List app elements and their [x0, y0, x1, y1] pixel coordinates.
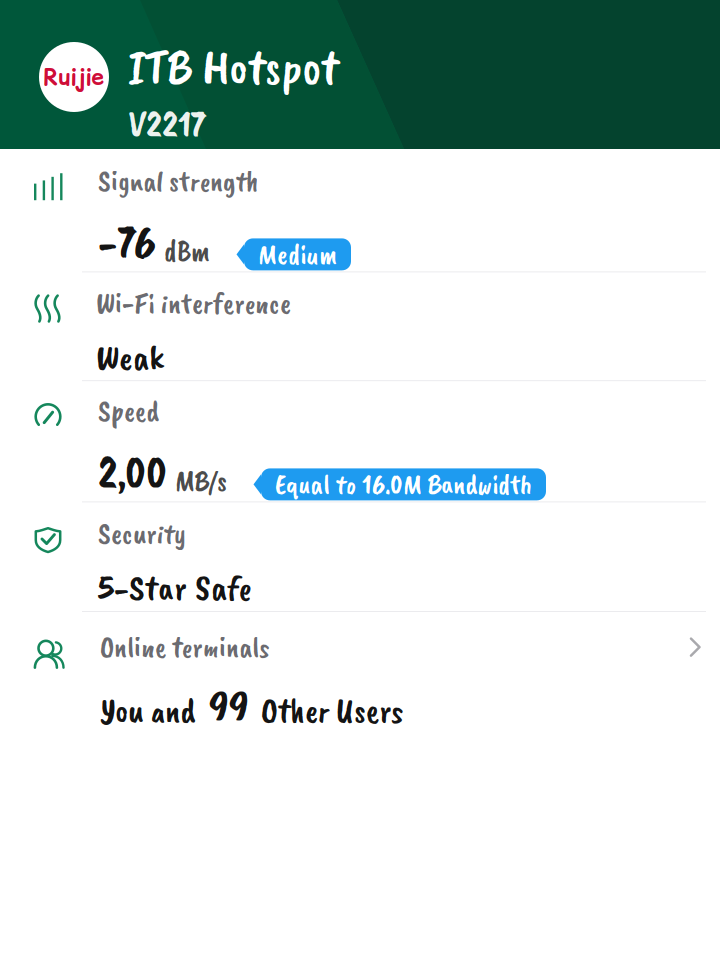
staticText: You and: [100, 689, 195, 732]
staticText: 99: [209, 679, 249, 732]
staticText: Medium: [258, 237, 337, 272]
staticText: Speed: [98, 393, 159, 430]
staticText: Online terminals: [100, 629, 269, 666]
staticText: Security: [98, 515, 186, 552]
staticText: -76: [98, 213, 156, 271]
staticText: 2,00: [98, 443, 167, 501]
staticText: ITB Hotspot: [128, 36, 338, 98]
staticText: Ruijie: [43, 61, 104, 93]
staticText: V2217: [128, 99, 206, 148]
staticText: Wi-Fi interference: [96, 285, 291, 322]
button[interactable]: Online terminals: [0, 612, 720, 730]
staticText: MB/s: [175, 462, 227, 499]
staticText: Other Users: [261, 689, 403, 732]
staticText: Equal to 16.0M Bandwidth: [275, 467, 532, 502]
staticText: dBm: [164, 232, 210, 269]
staticText: Weak: [96, 335, 164, 380]
staticText: Signal strength: [98, 163, 258, 200]
staticText: 5-Star Safe: [98, 565, 252, 610]
